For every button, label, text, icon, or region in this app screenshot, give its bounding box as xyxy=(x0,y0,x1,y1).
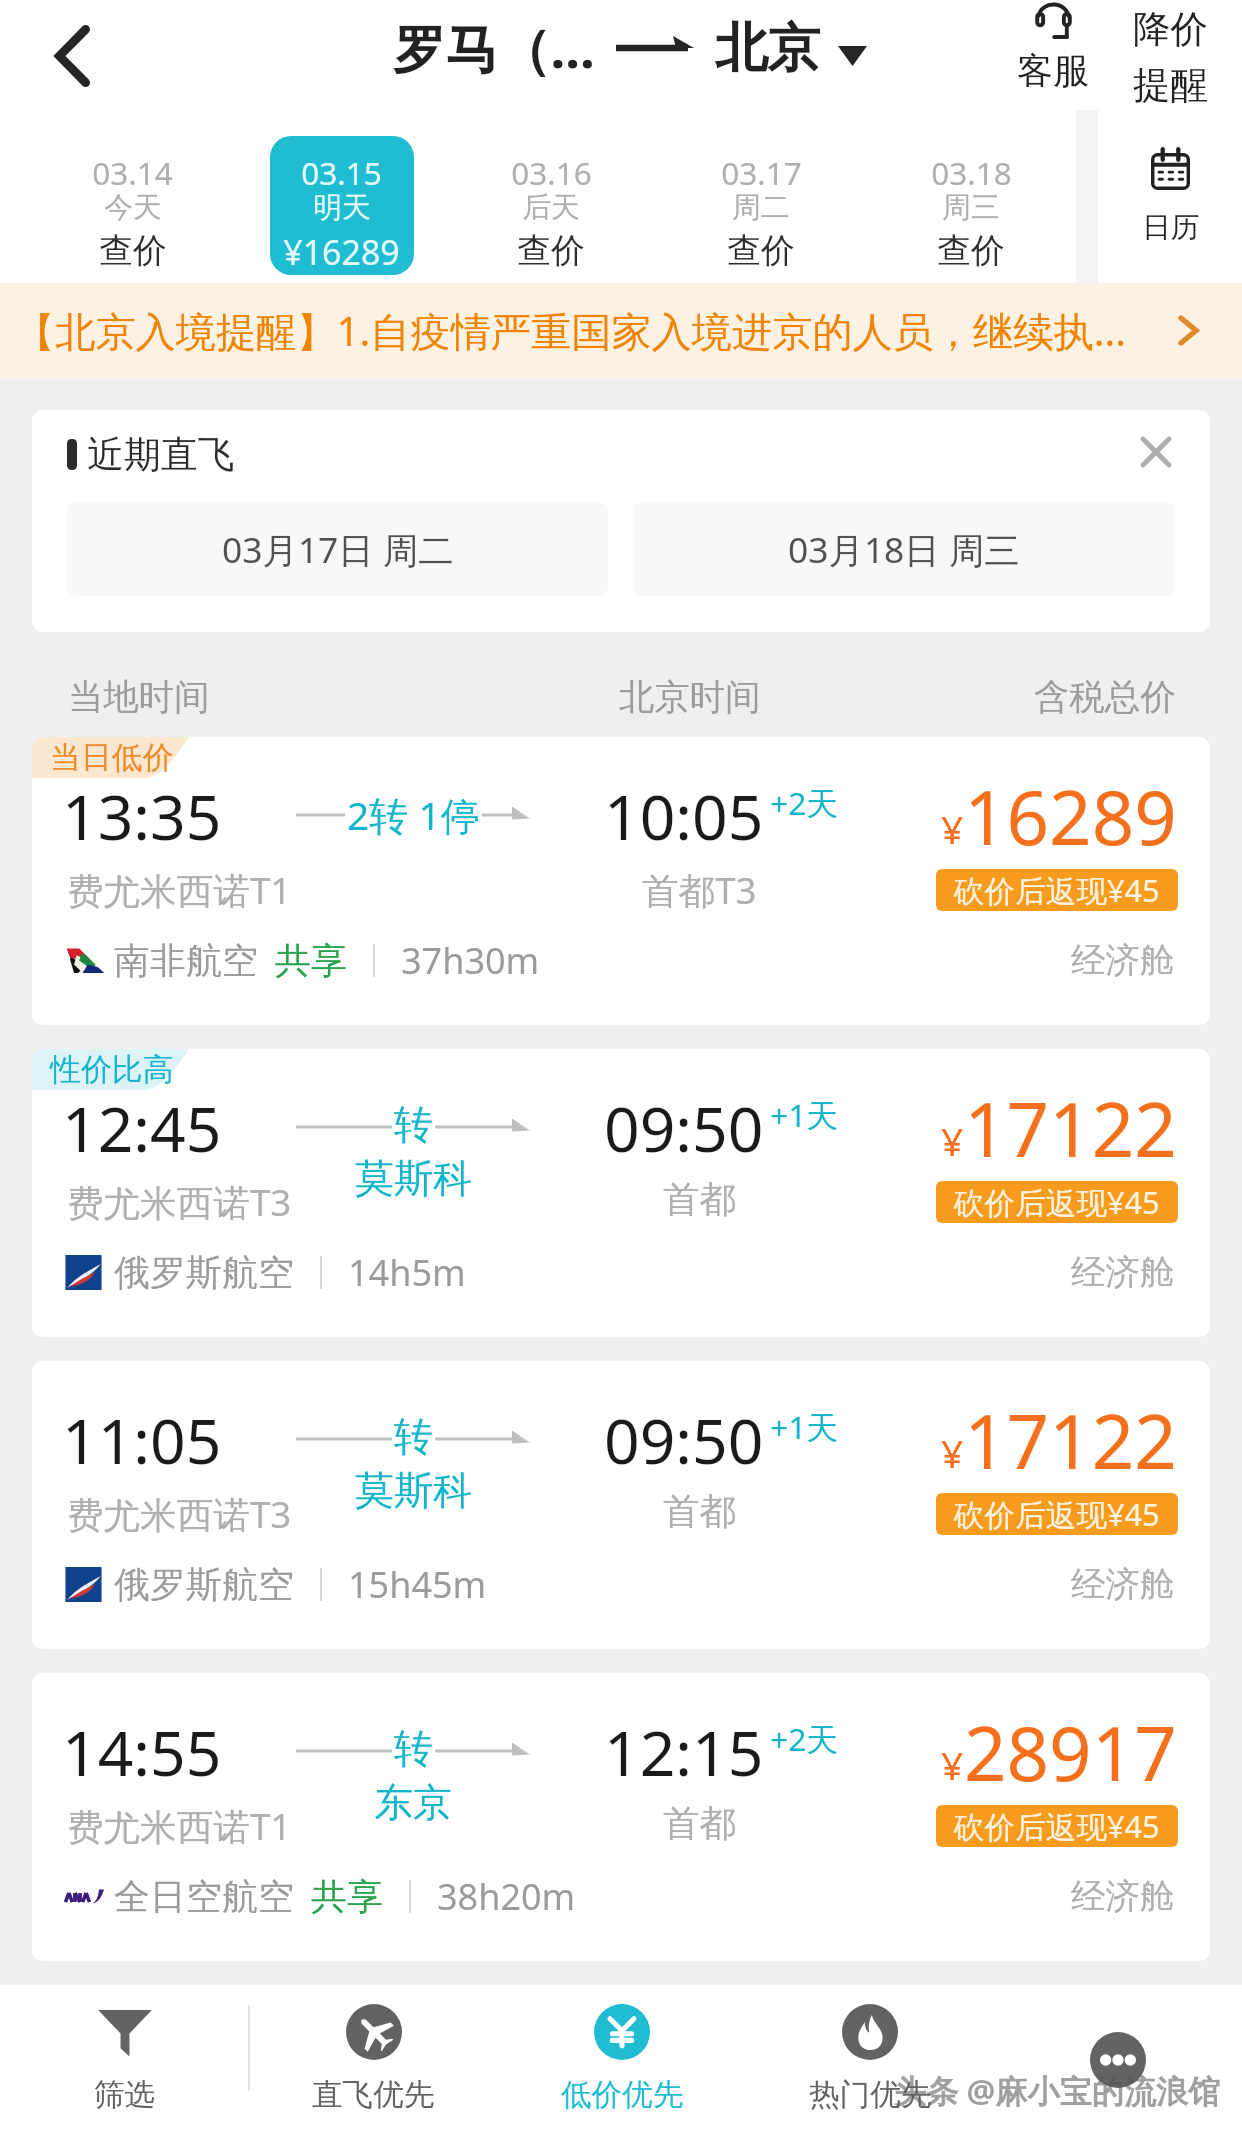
button[interactable]: 客服 xyxy=(1008,3,1098,93)
staticText: 性价比高 xyxy=(50,1050,174,1089)
staticText: 近期直飞 xyxy=(87,431,235,477)
staticText: 【北京入境提醒】1.自疫情严重国家入境进京的人员，继续执... xyxy=(15,303,1169,358)
staticText: ¥ xyxy=(941,802,964,855)
staticText: 筛选 xyxy=(94,2076,156,2115)
staticText: 经济舱 xyxy=(1071,939,1175,982)
staticText: 15h45m xyxy=(348,1560,487,1609)
staticText: 转 xyxy=(394,1412,433,1460)
staticText: 03月18日 周三 xyxy=(788,525,1020,573)
staticText: +2天 xyxy=(770,781,839,824)
staticText: 09:50 xyxy=(604,1397,764,1482)
button[interactable]: 性价比高 xyxy=(32,1049,1210,1337)
staticText: 13:35 xyxy=(62,773,222,858)
button[interactable]: Back xyxy=(39,6,105,105)
staticText: 09:50 xyxy=(604,1085,764,1170)
staticText: 当地时间 xyxy=(68,675,210,720)
staticText: 16289 xyxy=(964,765,1177,866)
staticText: ¥ xyxy=(941,1114,964,1167)
button[interactable]: 关闭 xyxy=(1123,419,1189,485)
staticText: 37h30m xyxy=(401,936,540,985)
button[interactable]: 03月18日 周三 xyxy=(633,502,1175,596)
staticText: 含税总价 xyxy=(1034,675,1176,720)
button[interactable]: 降价 xyxy=(1125,6,1215,109)
staticText: 直飞优先 xyxy=(312,2076,435,2115)
staticText: 03.17 xyxy=(721,151,802,194)
staticText: ¥16289 xyxy=(283,229,400,275)
staticText: 莫斯科 xyxy=(355,1154,472,1203)
button[interactable]: 【北京入境提醒】1.自疫情严重国家入境进京的人员，继续执... xyxy=(0,283,1242,378)
button[interactable] xyxy=(656,110,866,283)
button[interactable] xyxy=(28,110,237,283)
staticText: 全日空航空 xyxy=(114,1874,294,1919)
staticText: 费尤米西诺T3 xyxy=(67,1489,292,1539)
staticText: 17122 xyxy=(964,1077,1177,1178)
staticText: 03.18 xyxy=(931,151,1012,194)
staticText: 经济舱 xyxy=(1071,1875,1175,1918)
staticText: 莫斯科 xyxy=(355,1466,472,1515)
staticText: 降价 xyxy=(1133,6,1208,53)
staticText: 共享 xyxy=(275,938,347,983)
staticText: 砍价后返现¥45 xyxy=(954,1493,1160,1535)
staticText: 热门优先 xyxy=(809,2076,932,2115)
staticText: 转 xyxy=(394,1724,433,1772)
button[interactable]: 更多 xyxy=(994,1985,1242,2134)
staticText: 砍价后返现¥45 xyxy=(954,1181,1160,1223)
staticText: 当日低价 xyxy=(50,738,174,777)
staticText: 11:05 xyxy=(62,1397,222,1482)
staticText: 提醒 xyxy=(1133,62,1208,109)
staticText: 费尤米西诺T1 xyxy=(67,865,292,915)
staticText: 首都 xyxy=(663,1801,737,1847)
staticText: 费尤米西诺T3 xyxy=(67,1177,292,1227)
staticText: 砍价后返现¥45 xyxy=(954,1805,1160,1847)
staticText: 经济舱 xyxy=(1071,1251,1175,1294)
button[interactable]: 14:55 xyxy=(32,1673,1210,1961)
staticText: 北京时间 xyxy=(619,675,761,720)
staticText: 查价 xyxy=(937,229,1005,272)
staticText: 明天 xyxy=(313,189,371,225)
staticText: 12:15 xyxy=(604,1709,764,1794)
staticText: 10:05 xyxy=(604,773,764,858)
staticText: +2天 xyxy=(770,1717,839,1760)
staticText: 首都T3 xyxy=(642,865,757,915)
staticText: 14h5m xyxy=(348,1248,466,1297)
staticText: 查价 xyxy=(517,229,585,272)
button[interactable]: 日历 xyxy=(1098,110,1242,283)
staticText: 北京 xyxy=(715,15,820,81)
staticText: 03.15 xyxy=(301,151,382,194)
staticText: ¥ xyxy=(941,1738,964,1791)
staticText: 38h20m xyxy=(437,1872,576,1921)
button[interactable]: 筛选 xyxy=(0,1985,249,2134)
button[interactable]: 直飞优先 xyxy=(249,1985,498,2134)
staticText: 转 xyxy=(394,1100,433,1148)
staticText: 首都 xyxy=(663,1177,737,1223)
staticText: 低价优先 xyxy=(561,2076,684,2115)
button[interactable]: 当日低价 xyxy=(32,737,1210,1025)
staticText: 南非航空 xyxy=(114,938,258,983)
staticText: 周二 xyxy=(732,189,790,225)
staticText: 费尤米西诺T1 xyxy=(67,1801,292,1851)
staticText: 日历 xyxy=(1142,210,1199,246)
staticText: +1天 xyxy=(770,1405,839,1448)
staticText: ¥ xyxy=(941,1426,964,1479)
button[interactable]: 11:05 xyxy=(32,1361,1210,1649)
staticText: 首都 xyxy=(663,1489,737,1535)
staticText: 罗马（... xyxy=(393,12,595,84)
staticText: 03月17日 周二 xyxy=(222,525,454,573)
staticText: +1天 xyxy=(770,1093,839,1136)
button[interactable] xyxy=(446,110,656,283)
staticText: 03.14 xyxy=(92,151,173,194)
button[interactable]: 热门优先 xyxy=(746,1985,994,2134)
staticText: 12:45 xyxy=(62,1085,222,1170)
staticText: 头条 @麻小宝的流浪馆 xyxy=(894,2069,1221,2113)
staticText: 俄罗斯航空 xyxy=(114,1250,294,1295)
button[interactable] xyxy=(270,136,414,275)
staticText: 砍价后返现¥45 xyxy=(954,869,1160,911)
button[interactable]: 03月17日 周二 xyxy=(67,502,608,596)
button[interactable]: 低价优先 xyxy=(498,1985,746,2134)
staticText: 东京 xyxy=(374,1778,452,1827)
staticText: 17122 xyxy=(964,1389,1177,1490)
staticText: 共享 xyxy=(311,1874,383,1919)
button[interactable] xyxy=(866,110,1076,283)
staticText: 经济舱 xyxy=(1071,1563,1175,1606)
staticText: 查价 xyxy=(99,229,167,272)
